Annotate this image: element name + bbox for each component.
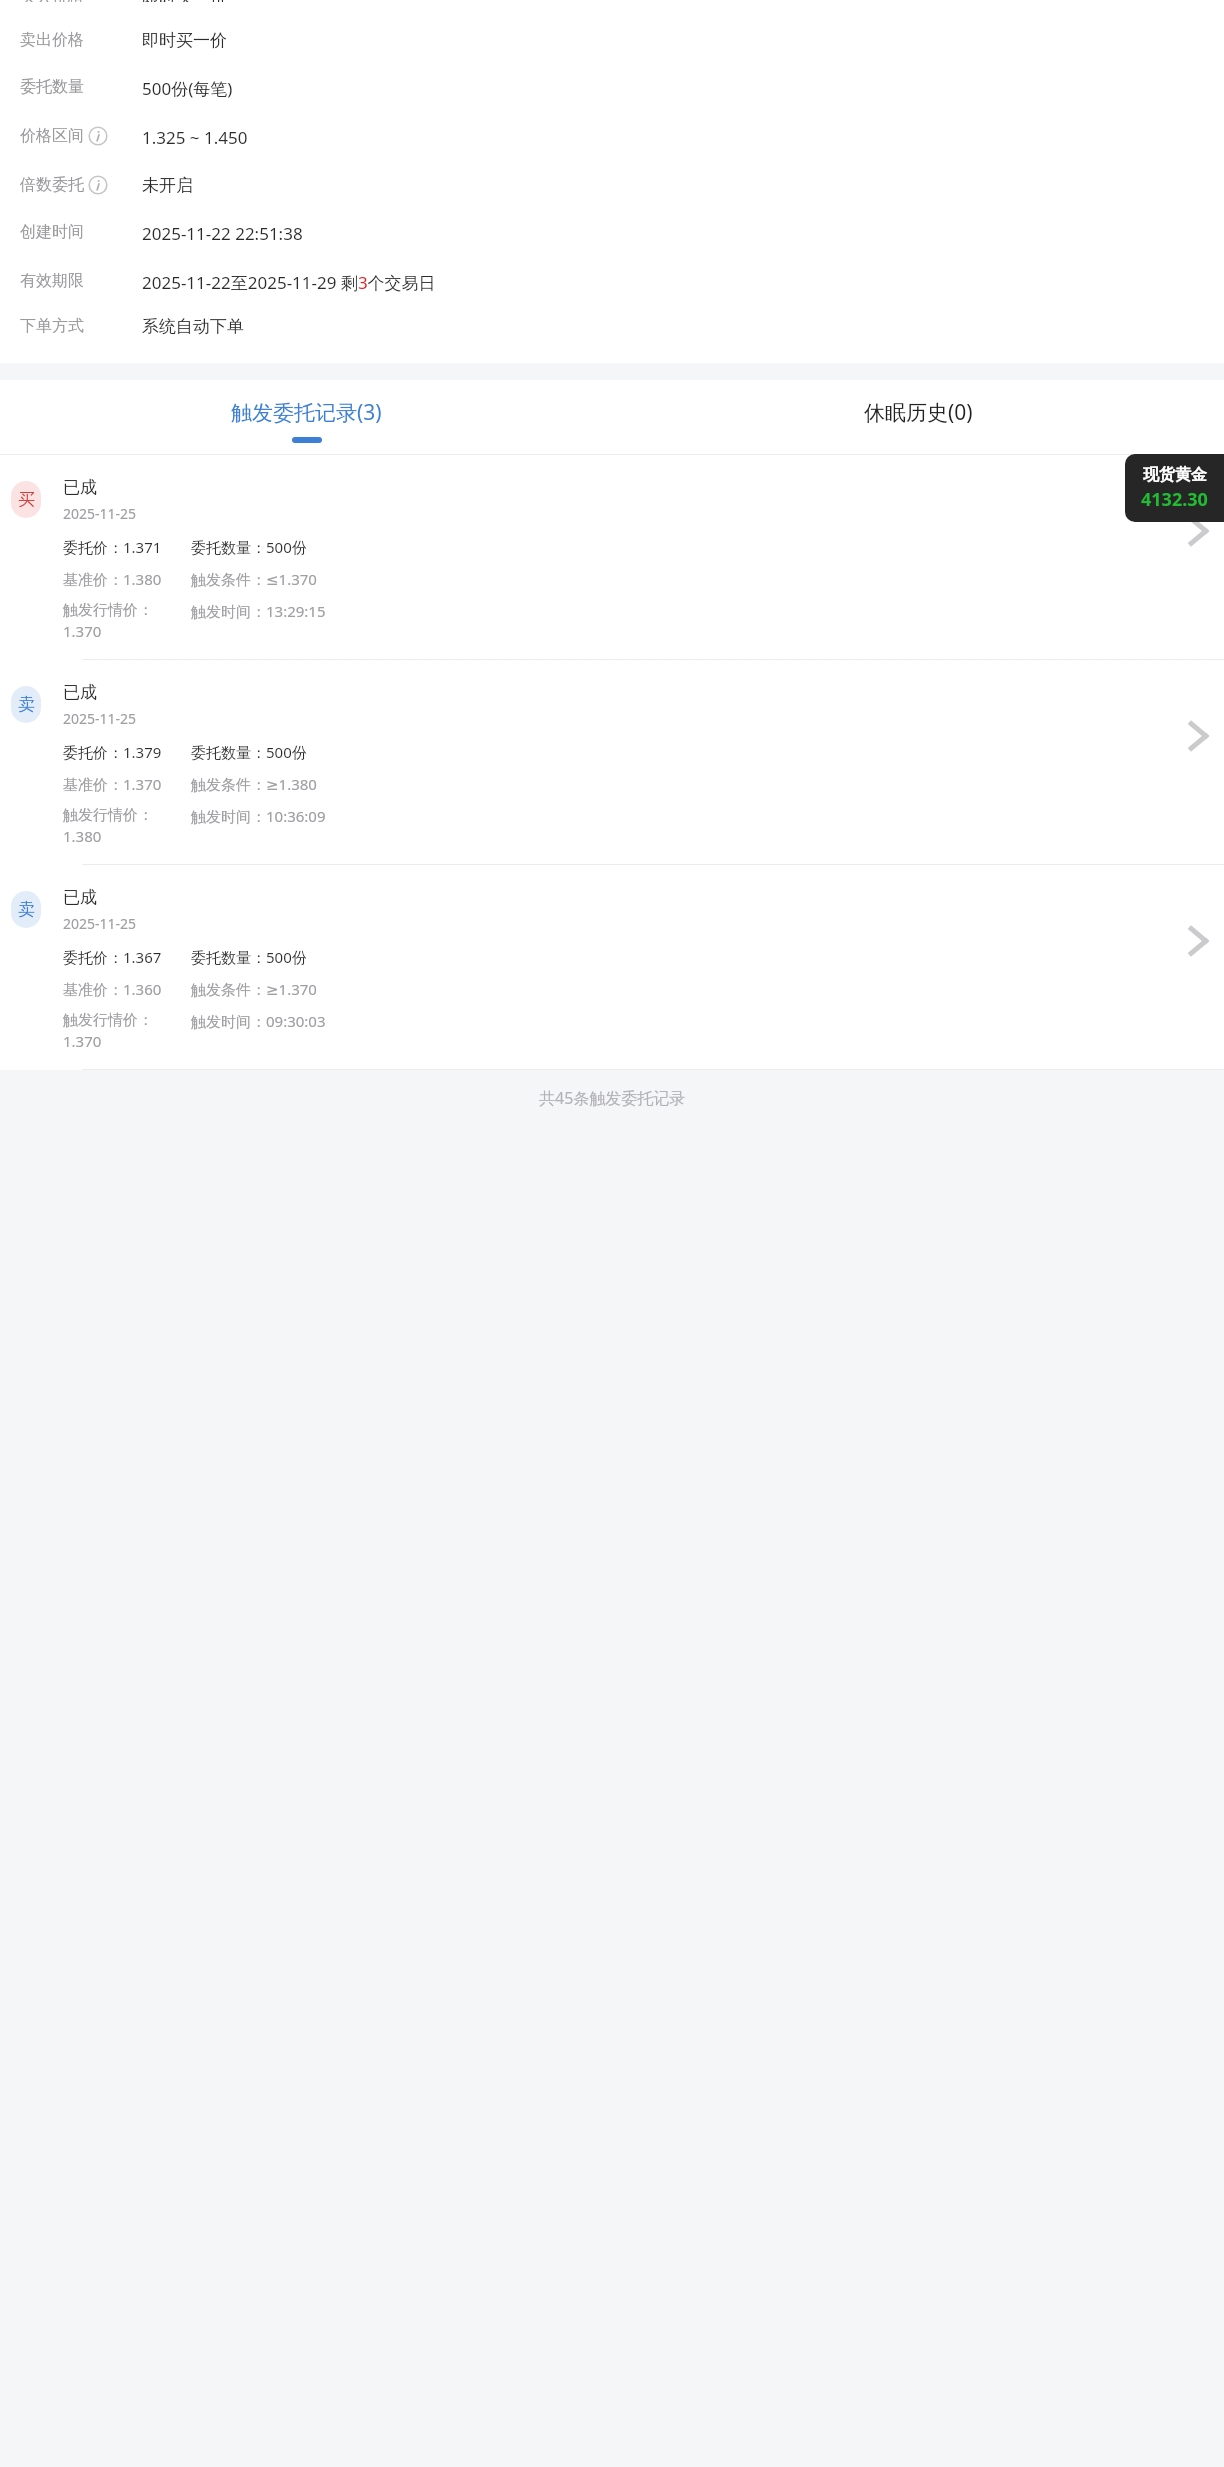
staticText: 500份(每笔): [142, 77, 233, 100]
staticText: 未开启: [142, 175, 193, 196]
staticText: 4132.30: [1141, 487, 1208, 512]
staticText: 2025-11-25: [63, 914, 137, 933]
button[interactable]: 卖: [0, 865, 1224, 1069]
button[interactable]: 倍数委托: [0, 149, 1224, 196]
button[interactable]: 触发委托记录(3): [0, 380, 612, 454]
other: 查看详情: [1186, 714, 1212, 758]
staticText: 基准价：1.360: [63, 979, 191, 999]
staticText: 买入价格: [20, 0, 130, 2]
staticText: 即时买一价: [142, 30, 227, 51]
staticText: 已成: [63, 887, 97, 908]
staticText: 2025-11-22 22:51:38: [142, 222, 303, 245]
staticText: 触发条件：≥1.370: [191, 979, 317, 999]
staticText: 下单方式: [20, 316, 84, 336]
staticText: 卖: [18, 899, 35, 920]
staticText: 休眠历史(0): [864, 398, 973, 427]
staticText: 基准价：1.380: [63, 569, 191, 589]
staticText: 价格区间: [20, 126, 84, 146]
staticText: 委托数量：500份: [191, 537, 307, 557]
staticText: 触发时间：10:36:09: [191, 806, 326, 826]
button[interactable]: 现货黄金 4132.30: [1125, 454, 1224, 522]
staticText: 现货黄金: [1143, 465, 1207, 485]
other: 查看详情: [1186, 509, 1212, 553]
staticText: 委托数量: [20, 77, 84, 97]
staticText: 卖: [18, 694, 35, 715]
staticText: 系统自动下单: [142, 316, 244, 337]
button[interactable]: 价格区间: [0, 100, 1224, 149]
button[interactable]: 卖: [0, 660, 1224, 864]
staticText: 共45条触发委托记录: [539, 1087, 686, 1109]
staticText: 触发委托记录(3): [231, 398, 382, 427]
staticText: 委托数量：500份: [191, 742, 307, 762]
staticText: 触发行情价：1.370: [63, 1011, 191, 1051]
staticText: 2025-11-25: [63, 504, 137, 523]
staticText: 1.325 ~ 1.450: [142, 126, 248, 149]
staticText: 触发行情价：1.370: [63, 601, 191, 641]
button[interactable]: 有效期限: [0, 245, 1224, 294]
staticText: 已成: [63, 682, 97, 703]
other: 查看详情: [1186, 919, 1212, 963]
button[interactable]: 买: [0, 455, 1224, 659]
staticText: 创建时间: [20, 222, 84, 242]
staticText: 有效期限: [20, 271, 84, 291]
staticText: 2025-11-25: [63, 709, 137, 728]
button[interactable]: 卖出价格: [0, 14, 1224, 51]
staticText: 买: [18, 489, 35, 510]
staticText: 已成: [63, 477, 97, 498]
staticText: 触发条件：≥1.380: [191, 774, 317, 794]
staticText: 委托价：1.379: [63, 742, 191, 762]
staticText: 触发时间：09:30:03: [191, 1011, 326, 1031]
staticText: 触发时间：13:29:15: [191, 601, 326, 621]
staticText: 基准价：1.370: [63, 774, 191, 794]
staticText: 委托价：1.367: [63, 947, 191, 967]
staticText: 卖出价格: [20, 30, 84, 50]
button[interactable]: 下单方式: [0, 294, 1224, 337]
staticText: 委托价：1.371: [63, 537, 191, 557]
staticText: 即时买一价: [142, 0, 227, 2]
staticText: 触发行情价：1.380: [63, 806, 191, 846]
button[interactable]: 休眠历史(0): [612, 380, 1224, 454]
staticText: 2025-11-22至2025-11-29 剩3个交易日: [142, 271, 436, 294]
button[interactable]: 创建时间: [0, 196, 1224, 245]
staticText: 委托数量：500份: [191, 947, 307, 967]
button[interactable]: 委托数量: [0, 51, 1224, 100]
staticText: 倍数委托: [20, 175, 84, 195]
staticText: 触发条件：≤1.370: [191, 569, 317, 589]
